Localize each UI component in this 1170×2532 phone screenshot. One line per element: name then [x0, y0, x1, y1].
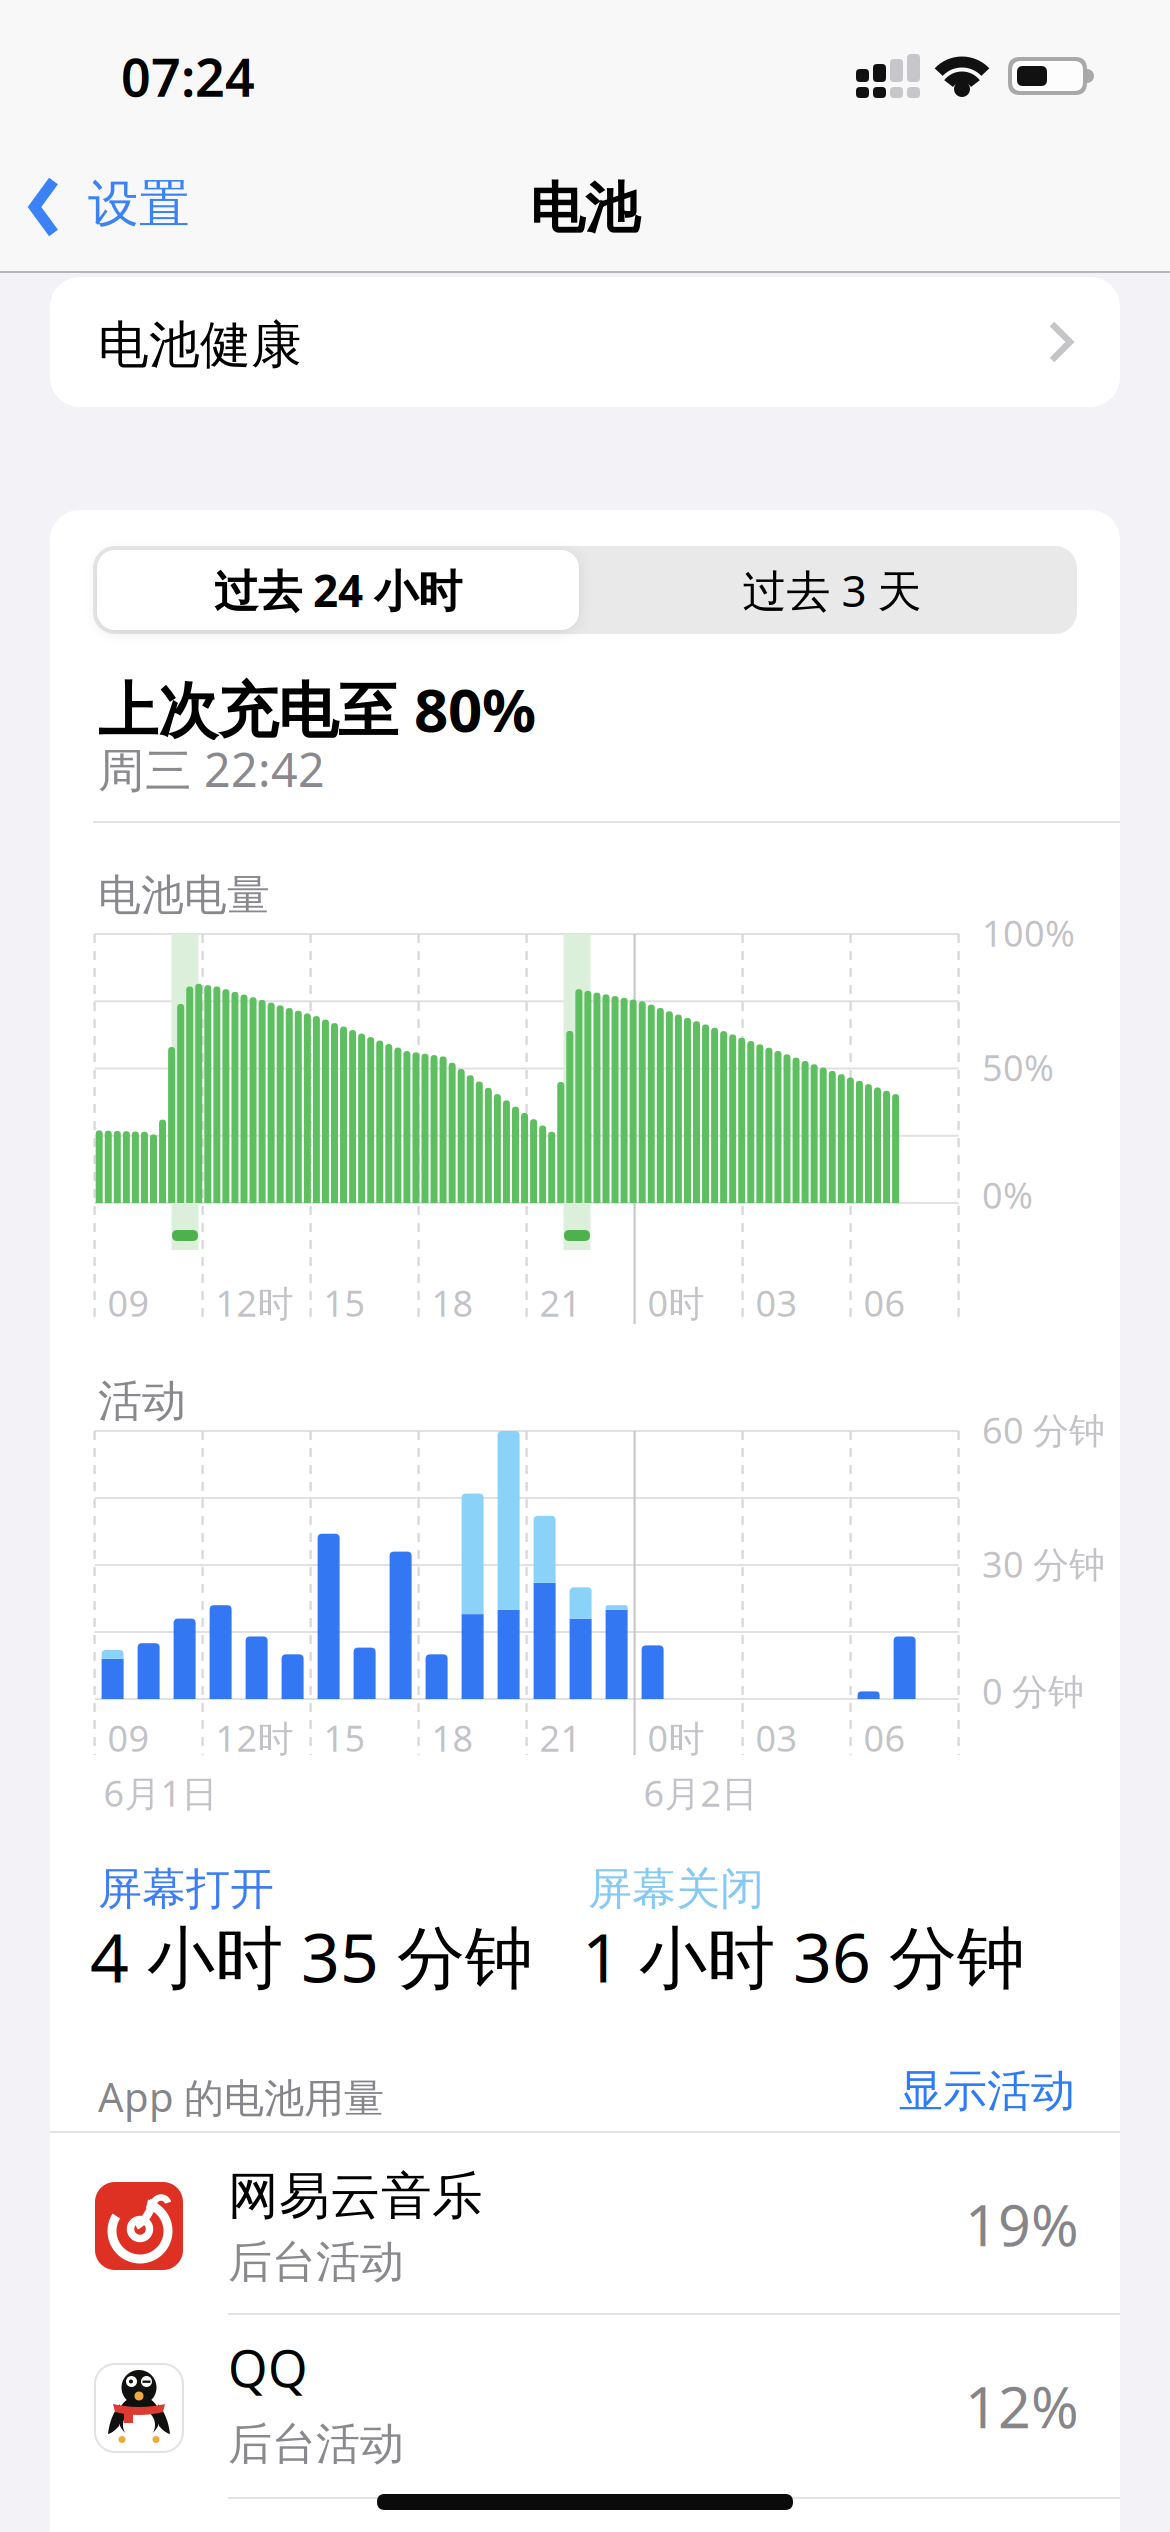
staticText: 后台活动: [228, 2417, 404, 2471]
staticText: 18: [432, 1279, 474, 1327]
staticText: 60 分钟: [982, 1406, 1105, 1454]
staticText: 电池电量: [98, 869, 270, 921]
button[interactable]: 显示活动: [795, 2064, 1075, 2118]
staticText: 15: [324, 1714, 366, 1762]
staticText: 12%: [965, 2368, 1079, 2444]
button[interactable]: 过去 24 小时: [97, 550, 579, 630]
staticText: 15: [324, 1279, 366, 1327]
button[interactable]: 网易云音乐: [50, 2133, 1120, 2315]
staticText: 0 分钟: [982, 1667, 1084, 1715]
staticText: 电池健康: [98, 314, 302, 376]
staticText: 12时: [216, 1714, 294, 1762]
staticText: 21: [540, 1279, 582, 1327]
staticText: 21: [540, 1714, 582, 1762]
staticText: 06: [864, 1714, 906, 1762]
staticText: 6月1日: [104, 1769, 218, 1817]
staticText: App 的电池用量: [98, 2070, 384, 2123]
staticText: 07:24: [121, 42, 255, 111]
staticText: 后台活动: [228, 2235, 404, 2289]
staticText: 4 小时 35 分钟: [90, 1911, 533, 2001]
staticText: 活动: [98, 1374, 186, 1428]
staticText: 周三 22:42: [98, 738, 325, 800]
staticText: 0时: [648, 1714, 705, 1762]
staticText: 屏幕关闭: [588, 1862, 764, 1916]
staticText: 显示活动: [899, 2064, 1075, 2118]
button[interactable]: 过去 3 天: [591, 550, 1073, 630]
staticText: 19%: [965, 2186, 1079, 2262]
staticText: 09: [108, 1714, 150, 1762]
staticText: 设置: [88, 173, 190, 235]
staticText: 50%: [982, 1043, 1054, 1091]
staticText: 上次充电至 80%: [98, 669, 536, 749]
button[interactable]: 返回设置: [28, 168, 248, 248]
staticText: 过去 3 天: [742, 561, 921, 619]
staticText: 03: [756, 1714, 798, 1762]
staticText: 电池: [530, 175, 640, 242]
staticText: 6月2日: [644, 1769, 758, 1817]
staticText: 18: [432, 1714, 474, 1762]
staticText: 网易云音乐: [228, 2165, 483, 2227]
staticText: 1 小时 36 分钟: [582, 1911, 1025, 2001]
staticText: QQ: [228, 2334, 308, 2401]
staticText: 屏幕打开: [98, 1862, 274, 1916]
staticText: 100%: [982, 909, 1075, 957]
staticText: 12时: [216, 1279, 294, 1327]
staticText: 03: [756, 1279, 798, 1327]
button[interactable]: QQ: [50, 2315, 1120, 2497]
staticText: 0时: [648, 1279, 705, 1327]
staticText: 09: [108, 1279, 150, 1327]
button[interactable]: 电池健康: [50, 277, 1120, 407]
staticText: 过去 24 小时: [214, 561, 462, 619]
staticText: 30 分钟: [982, 1540, 1105, 1588]
staticText: 06: [864, 1279, 906, 1327]
staticText: 0%: [982, 1171, 1033, 1219]
